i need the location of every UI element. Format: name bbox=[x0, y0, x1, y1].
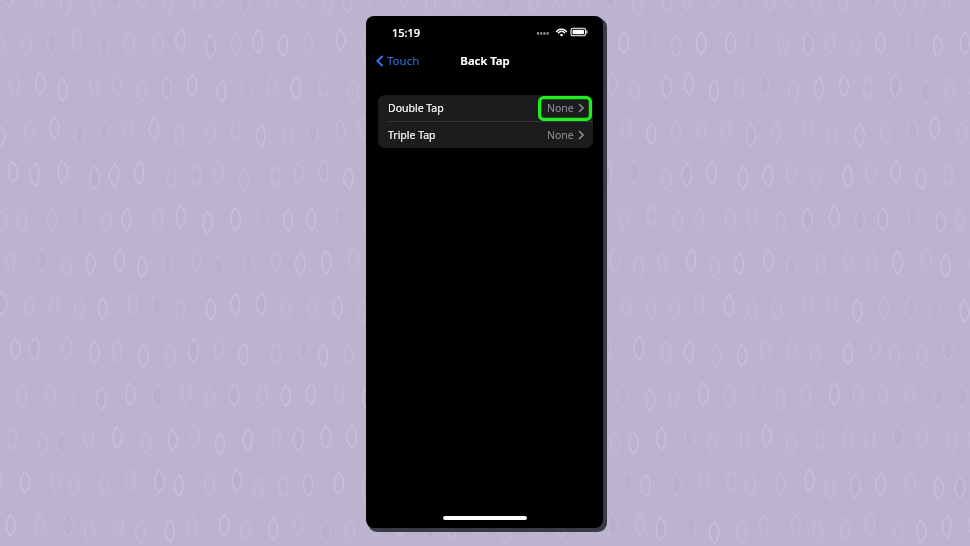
button[interactable]: Touch bbox=[373, 50, 423, 72]
staticText: None bbox=[547, 128, 574, 142]
staticText: Back Tap bbox=[460, 53, 510, 69]
button[interactable]: Double Tap bbox=[378, 95, 593, 121]
button[interactable]: Triple Tap bbox=[378, 122, 593, 148]
staticText: Triple Tap bbox=[388, 128, 436, 142]
staticText: Double Tap bbox=[388, 101, 444, 115]
staticText: Touch bbox=[387, 53, 420, 69]
staticText: None bbox=[547, 101, 574, 115]
staticText: 15:19 bbox=[392, 25, 421, 40]
